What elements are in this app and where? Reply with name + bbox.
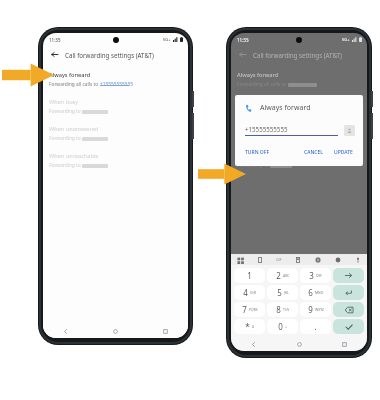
button[interactable]: Pick contact [344,125,355,136]
staticText: Forwarding to [49,135,82,142]
button[interactable]: GIF [276,257,282,262]
staticText: * [245,321,250,332]
staticText: When unreachable [237,152,287,160]
staticText: 5G+ [163,37,171,42]
staticText: Call forwarding settings (AT&T) [253,51,342,59]
staticText: 1 [247,270,252,281]
staticText: 9 [308,304,313,315]
button[interactable]: When unreachable [43,147,188,174]
button[interactable]: Voice input [354,256,362,264]
button[interactable]: Back [249,340,258,349]
staticText: Always forward [237,71,279,79]
staticText: When unreachable [49,152,99,160]
staticText: ABC [283,273,290,278]
button[interactable]: Stickers [294,256,302,264]
staticText: Forwarding to [237,108,270,115]
staticText: GHI [250,290,257,295]
staticText: TURN OFF [245,149,270,156]
staticText: 2 [276,270,281,281]
staticText: +15555555555 [245,125,288,133]
staticText: When unanswered [49,125,99,133]
button[interactable]: Done [333,319,364,334]
staticText: UPDATE [334,149,353,156]
staticText: 11:35 [49,37,61,43]
staticText: Always forward [49,71,91,79]
staticText: TUV [283,307,290,312]
staticText: # [252,324,255,329]
button[interactable]: Navigate up [49,49,60,60]
button[interactable]: Enter [333,285,364,300]
staticText: JKL [284,290,289,295]
button[interactable]: Home [111,327,120,336]
staticText: 3 [309,270,314,281]
button[interactable]: TURN OFF [244,147,271,158]
staticText: Forwarding to [237,162,270,169]
button[interactable]: . [300,319,331,334]
button[interactable]: Home [295,340,304,349]
button[interactable]: Recents [340,340,349,349]
button[interactable]: 2 [267,268,298,283]
staticText: 5G+ [342,37,350,42]
staticText: 5 [277,287,282,298]
button[interactable]: 7 [234,302,265,317]
staticText: 0 [278,321,283,332]
button[interactable]: Keyboard layouts [236,256,244,264]
staticText: Forwarding all calls to [237,81,288,88]
button[interactable]: Back [61,327,70,336]
button[interactable]: Clipboard [256,256,264,264]
button[interactable]: Recents [161,327,170,336]
staticText: 6 [308,287,313,298]
staticText: 11:35 [237,37,249,43]
staticText: Forwarding all calls to [49,81,100,88]
staticText: . [314,321,317,332]
button[interactable]: 0 [267,319,298,334]
button[interactable]: When unanswered [43,120,188,147]
staticText: 7 [242,304,247,315]
button[interactable]: Emoji [334,256,342,264]
button[interactable]: 1 [234,268,265,283]
staticText: WXYZ [315,307,324,312]
button[interactable]: 6 [300,285,331,300]
button[interactable]: 5 [267,285,298,300]
staticText: When unanswered [237,125,287,133]
button[interactable]: When busy [43,93,188,120]
button[interactable]: Always forward [43,66,188,93]
button[interactable]: 4 [234,285,265,300]
staticText: +15555555555 [100,81,133,88]
button[interactable]: UPDATE [333,147,354,158]
staticText: CANCEL [304,149,323,156]
staticText: 8 [276,304,281,315]
staticText: + [285,324,287,329]
staticText: When busy [49,98,79,106]
other: Highlight Always forward row [2,62,54,88]
button[interactable]: Backspace [333,302,364,317]
staticText: 4 [243,287,248,298]
button[interactable]: 3 [300,268,331,283]
staticText: MNO [315,290,324,295]
staticText: Forwarding to [49,108,82,115]
button[interactable]: Keyboard settings [314,256,322,264]
staticText: When busy [237,98,267,106]
staticText: PQRS [249,307,258,312]
button[interactable]: 8 [267,302,298,317]
staticText: Call forwarding settings (AT&T) [65,51,154,59]
staticText: GIF [276,257,282,262]
button[interactable]: Tab [333,268,364,283]
other: Highlight Turn off button [198,162,246,186]
button[interactable]: * [234,319,265,334]
staticText: Always forward [260,103,311,113]
button[interactable]: 9 [300,302,331,317]
button[interactable]: CANCEL [303,147,324,158]
staticText: Forwarding to [49,162,82,169]
staticText: DEF [316,273,323,278]
staticText: Forwarding to [237,135,270,142]
